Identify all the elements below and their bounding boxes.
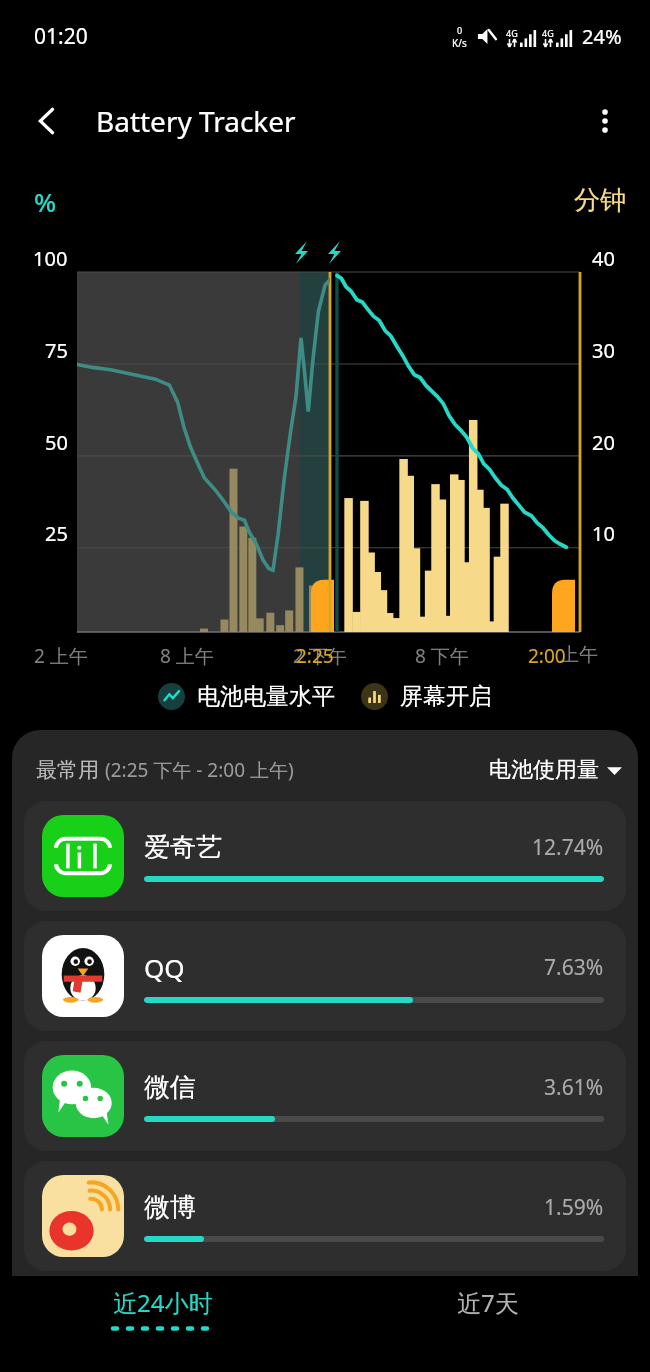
button[interactable]: More options [576,92,634,150]
staticText: K/s [452,36,467,50]
staticText: 8 下午 [415,643,469,669]
staticText: 24% [582,23,622,50]
staticText: 40 [592,245,615,272]
staticText: 2 上午 [34,643,88,669]
staticText: % [34,184,57,219]
staticText: QQ [144,950,185,985]
button[interactable]: 电池电量水平 [158,682,335,711]
button[interactable]: 电池使用量 [489,756,622,784]
staticText: 爱奇艺 [144,831,222,864]
staticText: 电池电量水平 [197,682,335,711]
staticText: 屏幕开启 [400,682,492,711]
button[interactable]: 近24小时 [0,1286,325,1331]
button[interactable]: QQ [24,921,626,1031]
staticText: 分钟 [574,184,626,217]
staticText: 0 [457,24,463,36]
button[interactable]: 屏幕开启 [361,682,492,711]
staticText: 微博 [144,1191,196,1224]
staticText: 2:00 [528,643,566,669]
button[interactable]: Back [18,92,76,150]
staticText: 50 [45,429,68,456]
staticText: 2:25 [296,643,334,669]
staticText: 25 [45,520,68,547]
staticText: 微信 [144,1071,196,1104]
button[interactable]: 爱奇艺 [24,801,626,911]
staticText: (2:25 下午 - 2:00 上午) [105,757,294,783]
staticText: Battery Tracker [96,102,296,140]
staticText: 10 [592,520,615,547]
staticText: 3.61% [544,1073,604,1102]
staticText: 上午 [560,643,598,667]
staticText: 75 [45,337,68,364]
staticText: 最常用 [36,757,99,783]
staticText: 近24小时 [113,1286,213,1319]
staticText: 01:20 [34,22,88,51]
button[interactable]: 近7天 [325,1286,650,1331]
staticText: 电池使用量 [489,756,599,784]
staticText: 4G [542,27,554,39]
staticText: 1.59% [544,1193,604,1222]
staticText: 30 [592,337,615,364]
staticText: 8 上午 [160,643,214,669]
staticText: 20 [592,429,615,456]
staticText: 12.74% [532,833,604,862]
staticText: 4G [506,27,518,39]
button[interactable]: 微博 [24,1161,626,1271]
button[interactable]: 微信 [24,1041,626,1151]
staticText: 100 [33,245,68,272]
staticText: 2 下午 [293,643,347,669]
staticText: 7.63% [544,953,604,982]
staticText: 近7天 [457,1286,519,1319]
